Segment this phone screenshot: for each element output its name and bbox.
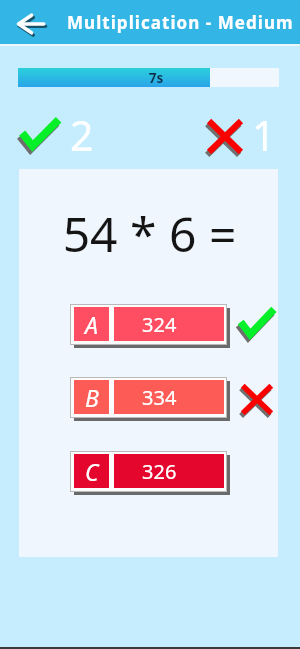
button[interactable]: A — [70, 304, 230, 348]
staticText: 54 * 6 = — [20, 201, 279, 266]
staticText: Multiplication - Medium — [67, 11, 294, 34]
staticText: 326 — [142, 458, 177, 485]
staticText: 1 — [252, 107, 276, 163]
staticText: 334 — [142, 384, 177, 411]
staticText: A — [85, 309, 98, 340]
staticText: 2 — [70, 107, 94, 163]
button[interactable]: Back — [10, 0, 52, 44]
staticText: C — [85, 456, 99, 487]
button[interactable]: B — [70, 377, 230, 421]
staticText: B — [85, 382, 99, 413]
staticText: 324 — [142, 311, 177, 338]
staticText: 7s — [146, 69, 166, 87]
button[interactable]: C — [70, 451, 230, 495]
